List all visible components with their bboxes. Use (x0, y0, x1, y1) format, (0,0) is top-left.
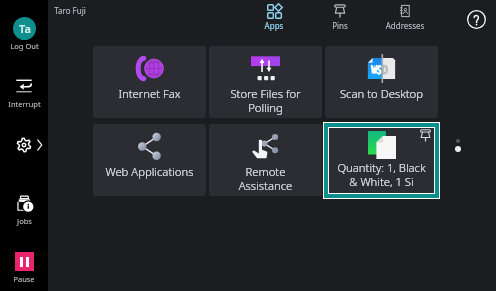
staticText: Internet Fax (93, 86, 206, 101)
button[interactable]: Jobs (0, 192, 48, 226)
button[interactable]: Scan to Desktop (325, 46, 438, 118)
staticText: Quantity: 1, Black & White, 1 Si (329, 160, 434, 190)
button[interactable]: Store Files for Polling (209, 46, 322, 118)
button[interactable]: Pins (311, 4, 369, 31)
staticText: Remote Assistance (209, 164, 322, 194)
staticText: Pause (13, 274, 35, 284)
button[interactable]: Expand menu (34, 136, 45, 154)
button[interactable]: Help (466, 9, 487, 30)
button[interactable]: Quantity: 1, Black & White, 1 Si (329, 128, 434, 193)
staticText: Apps (245, 20, 303, 31)
staticText: Log Out (10, 41, 39, 51)
staticText: Addresses (376, 20, 434, 31)
staticText: Jobs (17, 216, 32, 226)
button[interactable]: Remote Assistance (209, 124, 322, 196)
button[interactable]: Settings (14, 135, 34, 155)
staticText: Taro Fuji (54, 5, 86, 16)
button[interactable]: Pause (0, 252, 48, 284)
button[interactable]: Interrupt (0, 75, 48, 109)
staticText: Pins (311, 20, 369, 31)
button[interactable]: Addresses (376, 4, 434, 31)
staticText: Scan to Desktop (325, 86, 438, 101)
button[interactable]: Web Applications (93, 124, 206, 196)
staticText: Ta (19, 21, 31, 36)
staticText: Store Files for Polling (209, 86, 322, 116)
staticText: Web Applications (93, 164, 206, 179)
button[interactable]: Ta (0, 17, 48, 51)
button[interactable]: Apps (245, 4, 303, 31)
staticText: Interrupt (8, 99, 41, 109)
button[interactable]: Internet Fax (93, 46, 206, 118)
button[interactable]: Pin (419, 129, 432, 142)
